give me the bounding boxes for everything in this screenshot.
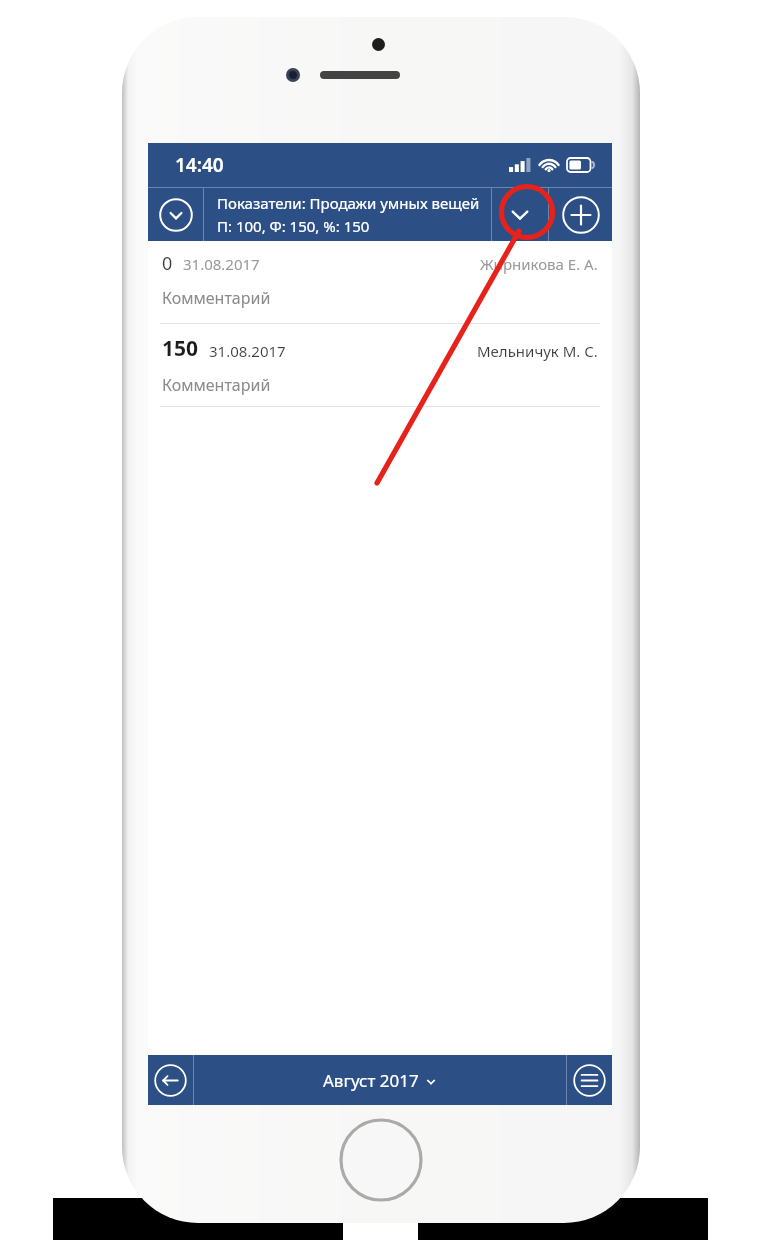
button[interactable]: Август 2017 bbox=[194, 1055, 566, 1105]
staticText: 150 bbox=[162, 334, 199, 363]
button[interactable]: Menu bbox=[567, 1055, 612, 1105]
staticText: 14:40 bbox=[175, 152, 224, 178]
button[interactable]: Back bbox=[148, 1055, 193, 1105]
staticText: Мельничук М. С. bbox=[477, 341, 598, 361]
staticText: Август 2017 bbox=[323, 1069, 419, 1092]
button[interactable]: 0 bbox=[148, 241, 612, 323]
button[interactable]: Show more bbox=[492, 188, 548, 241]
staticText: 31.08.2017 bbox=[209, 341, 286, 361]
staticText: П: 100, Ф: 150, %: 150 bbox=[217, 216, 370, 236]
button[interactable]: Показатели: Продажи умных вещей bbox=[204, 188, 491, 241]
staticText: 31.08.2017 bbox=[183, 254, 260, 274]
button[interactable]: Add bbox=[549, 188, 612, 241]
staticText: Показатели: Продажи умных вещей bbox=[217, 193, 480, 213]
staticText: Комментарий bbox=[162, 287, 271, 309]
staticText: Комментарий bbox=[162, 374, 271, 396]
button[interactable]: Expand left bbox=[159, 198, 193, 232]
staticText: Жирникова Е. А. bbox=[480, 254, 598, 274]
button[interactable]: 150 bbox=[148, 324, 612, 406]
staticText: 0 bbox=[162, 251, 173, 276]
button[interactable]: Expand left bbox=[148, 188, 203, 241]
